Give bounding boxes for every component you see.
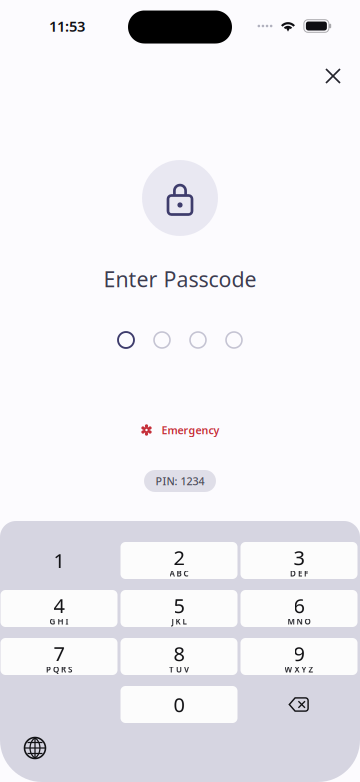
staticText: 4 (53, 592, 64, 619)
staticText: 0 (173, 691, 184, 718)
staticText: 1 (53, 547, 64, 574)
button[interactable]: Emergency (134, 417, 226, 443)
staticText: M N O (287, 616, 310, 627)
button[interactable]: 3 (240, 542, 357, 579)
button[interactable]: 5 (120, 590, 237, 627)
button[interactable]: Switch keyboard (13, 727, 57, 769)
button[interactable]: 0 (120, 686, 237, 723)
staticText: D E F (290, 568, 308, 579)
staticText: Emergency (161, 423, 219, 437)
staticText: 5 (173, 592, 184, 619)
staticText: W X Y Z (284, 664, 313, 675)
staticText: 11:53 (49, 16, 85, 36)
staticText: PIN: 1234 (155, 474, 204, 488)
staticText: 3 (293, 544, 304, 571)
staticText: T U V (169, 664, 189, 675)
button[interactable]: Delete (240, 686, 358, 723)
staticText: Enter Passcode (103, 265, 256, 293)
staticText: 8 (173, 640, 184, 667)
button[interactable]: 8 (120, 638, 237, 675)
staticText: 6 (293, 592, 304, 619)
button[interactable]: 6 (240, 590, 357, 627)
button[interactable]: Close (311, 54, 355, 98)
staticText: A B C (169, 568, 188, 579)
staticText: 2 (173, 544, 184, 571)
staticText: 9 (293, 640, 304, 667)
staticText: 7 (53, 640, 64, 667)
staticText: J K L (171, 616, 186, 627)
button[interactable]: 1 (0, 542, 117, 579)
button[interactable]: 9 (240, 638, 357, 675)
button[interactable]: PIN: 1234 (144, 470, 216, 492)
button[interactable]: 4 (0, 590, 117, 627)
staticText: P Q R S (46, 664, 72, 675)
button[interactable]: 2 (120, 542, 237, 579)
staticText: G H I (49, 616, 68, 627)
button[interactable]: 7 (0, 638, 117, 675)
